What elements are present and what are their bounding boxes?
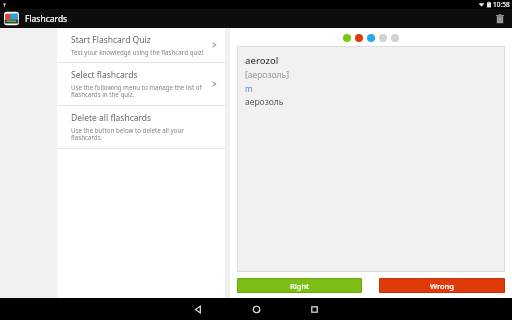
button[interactable]: Back <box>183 298 213 320</box>
button[interactable]: Select flashcards <box>57 63 225 105</box>
button[interactable]: Right <box>237 278 362 293</box>
staticText: Right <box>290 281 309 291</box>
button[interactable]: Card 1 <box>343 34 351 42</box>
button[interactable]: Delete all flashcards <box>57 106 225 148</box>
staticText: Test your knowledge using the flashcard … <box>71 48 204 56</box>
staticText: Use the following menu to manage the lis… <box>71 83 207 99</box>
staticText: [аерозоль] <box>245 69 290 81</box>
staticText: Delete all flashcards <box>71 112 152 124</box>
staticText: Select flashcards <box>71 69 138 81</box>
staticText: 10:58 <box>493 0 510 9</box>
staticText: Start Flashcard Quiz <box>71 34 151 46</box>
button[interactable]: Delete all flashcards <box>492 11 508 27</box>
staticText: m <box>245 83 253 94</box>
button[interactable]: Card 3 <box>367 34 375 42</box>
button[interactable]: Start Flashcard Quiz <box>57 28 225 62</box>
button[interactable]: Card 5 <box>391 34 399 42</box>
staticText: aerozol <box>245 54 279 67</box>
button[interactable]: Wrong <box>379 278 505 293</box>
button[interactable]: Recent apps <box>299 298 329 320</box>
staticText: Use the button below to delete all your … <box>71 126 207 142</box>
staticText: аерозоль <box>245 96 284 108</box>
button[interactable]: Home <box>241 298 271 320</box>
staticText: Flashcards <box>25 13 68 25</box>
staticText: Wrong <box>430 281 454 291</box>
button[interactable]: Card 2 <box>355 34 363 42</box>
button[interactable]: Card 4 <box>379 34 387 42</box>
